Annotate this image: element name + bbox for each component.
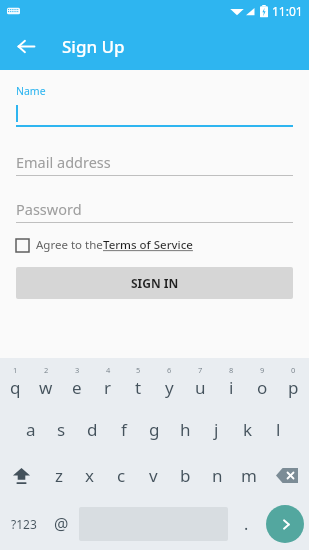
button[interactable]: Enter [266, 505, 304, 543]
staticText: 6 [167, 365, 172, 375]
staticText: Email address [16, 152, 111, 172]
button[interactable]: 1 [0, 358, 30, 406]
staticText: 7 [198, 365, 203, 375]
staticText: @ [54, 513, 69, 535]
staticText: 11:01 [272, 3, 303, 19]
button[interactable]: v [137, 452, 169, 498]
staticText: j [214, 418, 219, 441]
button[interactable]: h [170, 406, 201, 452]
button[interactable]: b [169, 452, 201, 498]
staticText: 0 [291, 365, 296, 375]
staticText: 9 [260, 365, 265, 375]
button[interactable]: x [74, 452, 105, 498]
staticText: w [39, 376, 53, 399]
staticText: o [257, 376, 268, 399]
staticText: x [85, 464, 94, 487]
staticText: 5 [136, 365, 141, 375]
button[interactable]: Email address [16, 149, 293, 175]
staticText: d [87, 418, 98, 441]
button[interactable]: @ [47, 498, 76, 550]
button[interactable]: 8 [216, 358, 247, 406]
staticText: k [243, 418, 253, 441]
button[interactable]: k [232, 406, 263, 452]
staticText: i [229, 376, 234, 399]
staticText: c [117, 464, 126, 487]
staticText: f [121, 418, 127, 441]
staticText: g [149, 418, 160, 441]
staticText: h [180, 418, 191, 441]
button[interactable]: s [46, 406, 77, 452]
staticText: Password [16, 199, 82, 219]
button[interactable]: f [108, 406, 139, 452]
staticText: b [180, 464, 191, 487]
staticText: v [149, 464, 158, 487]
staticText: . [244, 513, 249, 535]
button[interactable]: Agree to the [16, 237, 293, 253]
button[interactable]: Terms of Service [103, 237, 193, 253]
button[interactable]: ?123 [0, 498, 47, 550]
staticText: e [72, 376, 82, 399]
button[interactable]: . [231, 498, 261, 550]
staticText: p [288, 376, 299, 399]
staticText: t [135, 376, 142, 399]
button[interactable]: n [201, 452, 233, 498]
staticText: q [10, 376, 21, 399]
button[interactable]: j [201, 406, 232, 452]
button[interactable]: c [105, 452, 137, 498]
staticText: n [212, 464, 223, 487]
button[interactable]: SIGN IN [16, 267, 293, 299]
staticText: 3 [75, 365, 80, 375]
button[interactable]: 3 [61, 358, 92, 406]
staticText: a [26, 418, 36, 441]
button[interactable]: a [15, 406, 46, 452]
button[interactable]: Shift [0, 452, 43, 498]
button[interactable]: Back [8, 28, 44, 64]
staticText: m [241, 464, 257, 487]
button[interactable]: m [233, 452, 265, 498]
staticText: u [195, 376, 206, 399]
staticText: s [57, 418, 66, 441]
staticText: r [104, 376, 112, 399]
staticText: z [55, 464, 63, 487]
staticText: Name [16, 84, 46, 98]
button[interactable]: 6 [154, 358, 185, 406]
button[interactable] [16, 103, 293, 125]
staticText: SIGN IN [131, 275, 179, 291]
button[interactable]: 5 [123, 358, 154, 406]
staticText: l [276, 418, 281, 441]
button[interactable]: z [43, 452, 74, 498]
staticText: 8 [229, 365, 234, 375]
staticText: 2 [44, 365, 49, 375]
button[interactable]: g [139, 406, 170, 452]
staticText: Sign Up [62, 35, 125, 58]
button[interactable]: Password [16, 196, 293, 222]
staticText: ?123 [11, 516, 37, 532]
staticText: y [165, 376, 174, 399]
staticText: 1 [13, 365, 18, 375]
button[interactable]: 4 [92, 358, 123, 406]
button[interactable]: l [263, 406, 294, 452]
button[interactable]: 0 [278, 358, 309, 406]
button[interactable]: d [77, 406, 108, 452]
staticText: 4 [106, 365, 111, 375]
button[interactable]: 2 [30, 358, 61, 406]
button[interactable]: 7 [185, 358, 216, 406]
button[interactable]: 9 [247, 358, 278, 406]
button[interactable]: Backspace [265, 452, 309, 498]
staticText: Agree to the [36, 237, 103, 253]
